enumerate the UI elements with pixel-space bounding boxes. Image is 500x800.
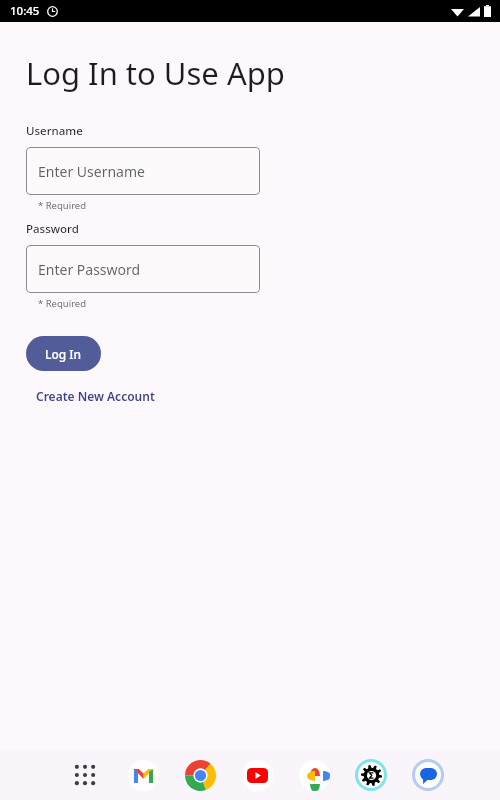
button[interactable]: Enter Username <box>26 147 260 195</box>
button[interactable]: Chrome <box>183 758 217 792</box>
staticText: Enter Username <box>38 162 145 181</box>
staticText: * Required <box>38 297 87 310</box>
staticText: Username <box>26 123 83 139</box>
button[interactable]: Messages <box>411 758 445 792</box>
button[interactable]: Create New Account <box>26 384 165 408</box>
button[interactable]: Gmail <box>126 758 160 792</box>
button[interactable]: Enter Password <box>26 245 260 293</box>
button[interactable]: Log In <box>26 336 101 371</box>
button[interactable]: YouTube <box>240 758 274 792</box>
staticText: 10:45 <box>10 3 40 19</box>
staticText: Password <box>26 221 79 237</box>
staticText: Enter Password <box>38 260 141 279</box>
button[interactable]: Settings <box>354 758 388 792</box>
staticText: Create New Account <box>36 388 155 404</box>
staticText: * Required <box>38 199 87 212</box>
button[interactable]: Apps <box>68 758 102 792</box>
staticText: Log In to Use App <box>26 52 285 94</box>
button[interactable]: Photos <box>297 758 331 792</box>
staticText: Log In <box>45 346 82 362</box>
